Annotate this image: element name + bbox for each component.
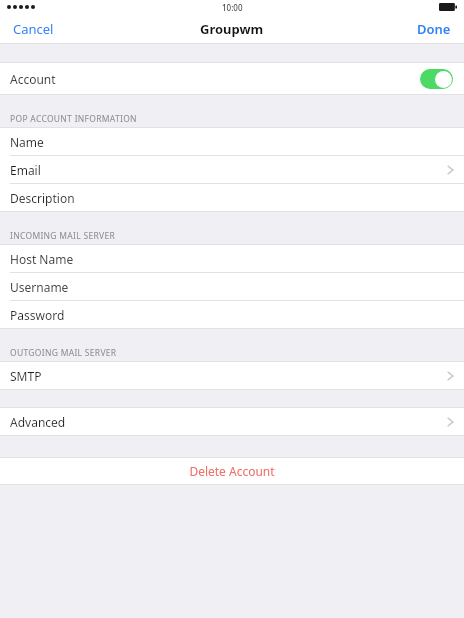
staticText: Name [10,134,44,150]
button[interactable]: Name [0,128,464,155]
button[interactable]: Host Name [0,245,464,272]
button[interactable]: Done [404,14,464,44]
staticText: Delete Account [189,463,275,479]
staticText: 10:00 [222,2,243,13]
button[interactable]: Account [0,63,464,94]
staticText: OUTGOING MAIL SERVER [10,347,117,359]
staticText: INCOMING MAIL SERVER [10,230,116,242]
button[interactable]: Cancel [0,14,67,44]
staticText: Account [10,71,56,87]
staticText: Host Name [10,251,74,267]
staticText: Advanced [10,414,66,430]
staticText: Groupwm [200,20,264,38]
staticText: Description [10,190,75,206]
button[interactable]: Username [0,273,464,300]
button[interactable]: Account enabled toggle [420,69,453,89]
button[interactable]: SMTP [0,362,464,389]
staticText: SMTP [10,368,42,384]
staticText: POP ACCOUNT INFORMATION [10,113,137,125]
staticText: Cancel [13,20,54,38]
staticText: Username [10,279,69,295]
button[interactable]: Delete Account [0,457,464,485]
button[interactable]: Password [0,301,464,328]
staticText: Password [10,307,65,323]
button[interactable]: Advanced [0,408,464,435]
button[interactable]: Description [0,184,464,211]
button[interactable]: Email [0,156,464,183]
staticText: Email [10,162,41,178]
staticText: Done [417,20,451,38]
